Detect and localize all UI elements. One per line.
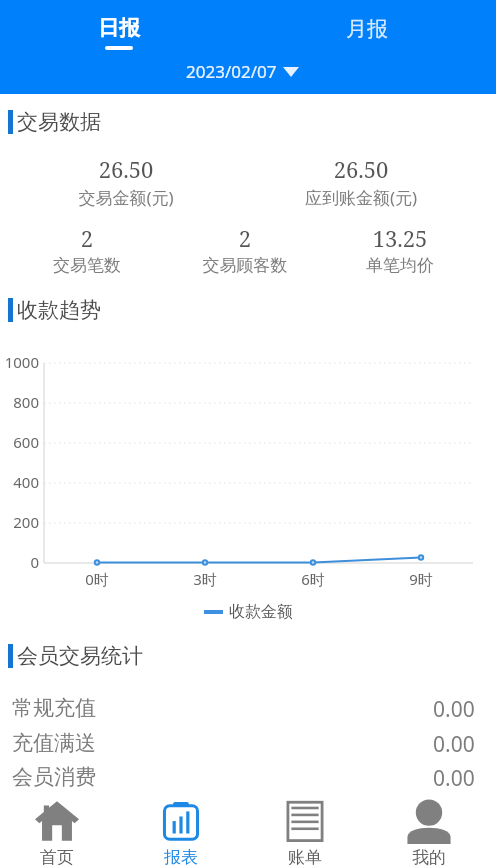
staticText: 交易顾客数	[175, 255, 315, 276]
staticText: 交易笔数	[17, 255, 157, 276]
staticText: 收款金额	[229, 602, 293, 622]
staticText: 收款趋势	[17, 297, 101, 323]
staticText: 0.00	[433, 730, 475, 759]
button[interactable]: 充值满送	[0, 730, 496, 765]
staticText: 200	[0, 512, 39, 532]
button[interactable]: 报表	[119, 798, 243, 867]
staticText: 0	[0, 552, 39, 572]
button[interactable]: 日报	[0, 0, 243, 56]
staticText: 13.25	[340, 223, 460, 253]
button[interactable]: 常规充值	[0, 695, 496, 730]
staticText: 交易金额(元)	[56, 186, 196, 209]
staticText: 26.50	[301, 154, 421, 184]
staticText: 月报	[346, 16, 388, 42]
staticText: 交易数据	[17, 109, 101, 135]
staticText: 充值满送	[12, 730, 96, 756]
staticText: 3时	[180, 569, 230, 589]
staticText: 0.00	[433, 695, 475, 724]
button[interactable]: 2023/02/07	[186, 60, 299, 83]
staticText: 600	[0, 432, 39, 452]
staticText: 首页	[40, 847, 74, 867]
staticText: 报表	[164, 847, 198, 867]
staticText: 我的	[412, 847, 446, 867]
staticText: 2	[185, 223, 305, 253]
staticText: 26.50	[66, 154, 186, 184]
staticText: 0.00	[433, 764, 475, 793]
staticText: 单笔均价	[330, 255, 470, 276]
staticText: 6时	[288, 569, 338, 589]
staticText: 1000	[0, 352, 39, 372]
button[interactable]: 首页	[0, 798, 119, 867]
button[interactable]: 我的	[367, 798, 491, 867]
other: 报表	[159, 800, 203, 842]
other: 我的	[407, 800, 451, 842]
staticText: 账单	[288, 847, 322, 867]
staticText: 应到账金额(元)	[291, 186, 431, 209]
staticText: 9时	[396, 569, 446, 589]
staticText: 会员交易统计	[17, 643, 143, 669]
staticText: 800	[0, 392, 39, 412]
staticText: 2023/02/07	[186, 60, 277, 83]
staticText: 会员消费	[12, 764, 96, 790]
staticText: 0时	[72, 569, 122, 589]
other: 首页	[35, 800, 79, 842]
staticText: 2	[27, 223, 147, 253]
staticText: 日报	[98, 15, 140, 41]
staticText: 400	[0, 472, 39, 492]
button[interactable]: 会员消费	[0, 764, 496, 799]
staticText: 常规充值	[12, 695, 96, 721]
other: 账单	[283, 800, 327, 842]
button[interactable]: 账单	[243, 798, 367, 867]
button[interactable]: 月报	[243, 0, 491, 56]
